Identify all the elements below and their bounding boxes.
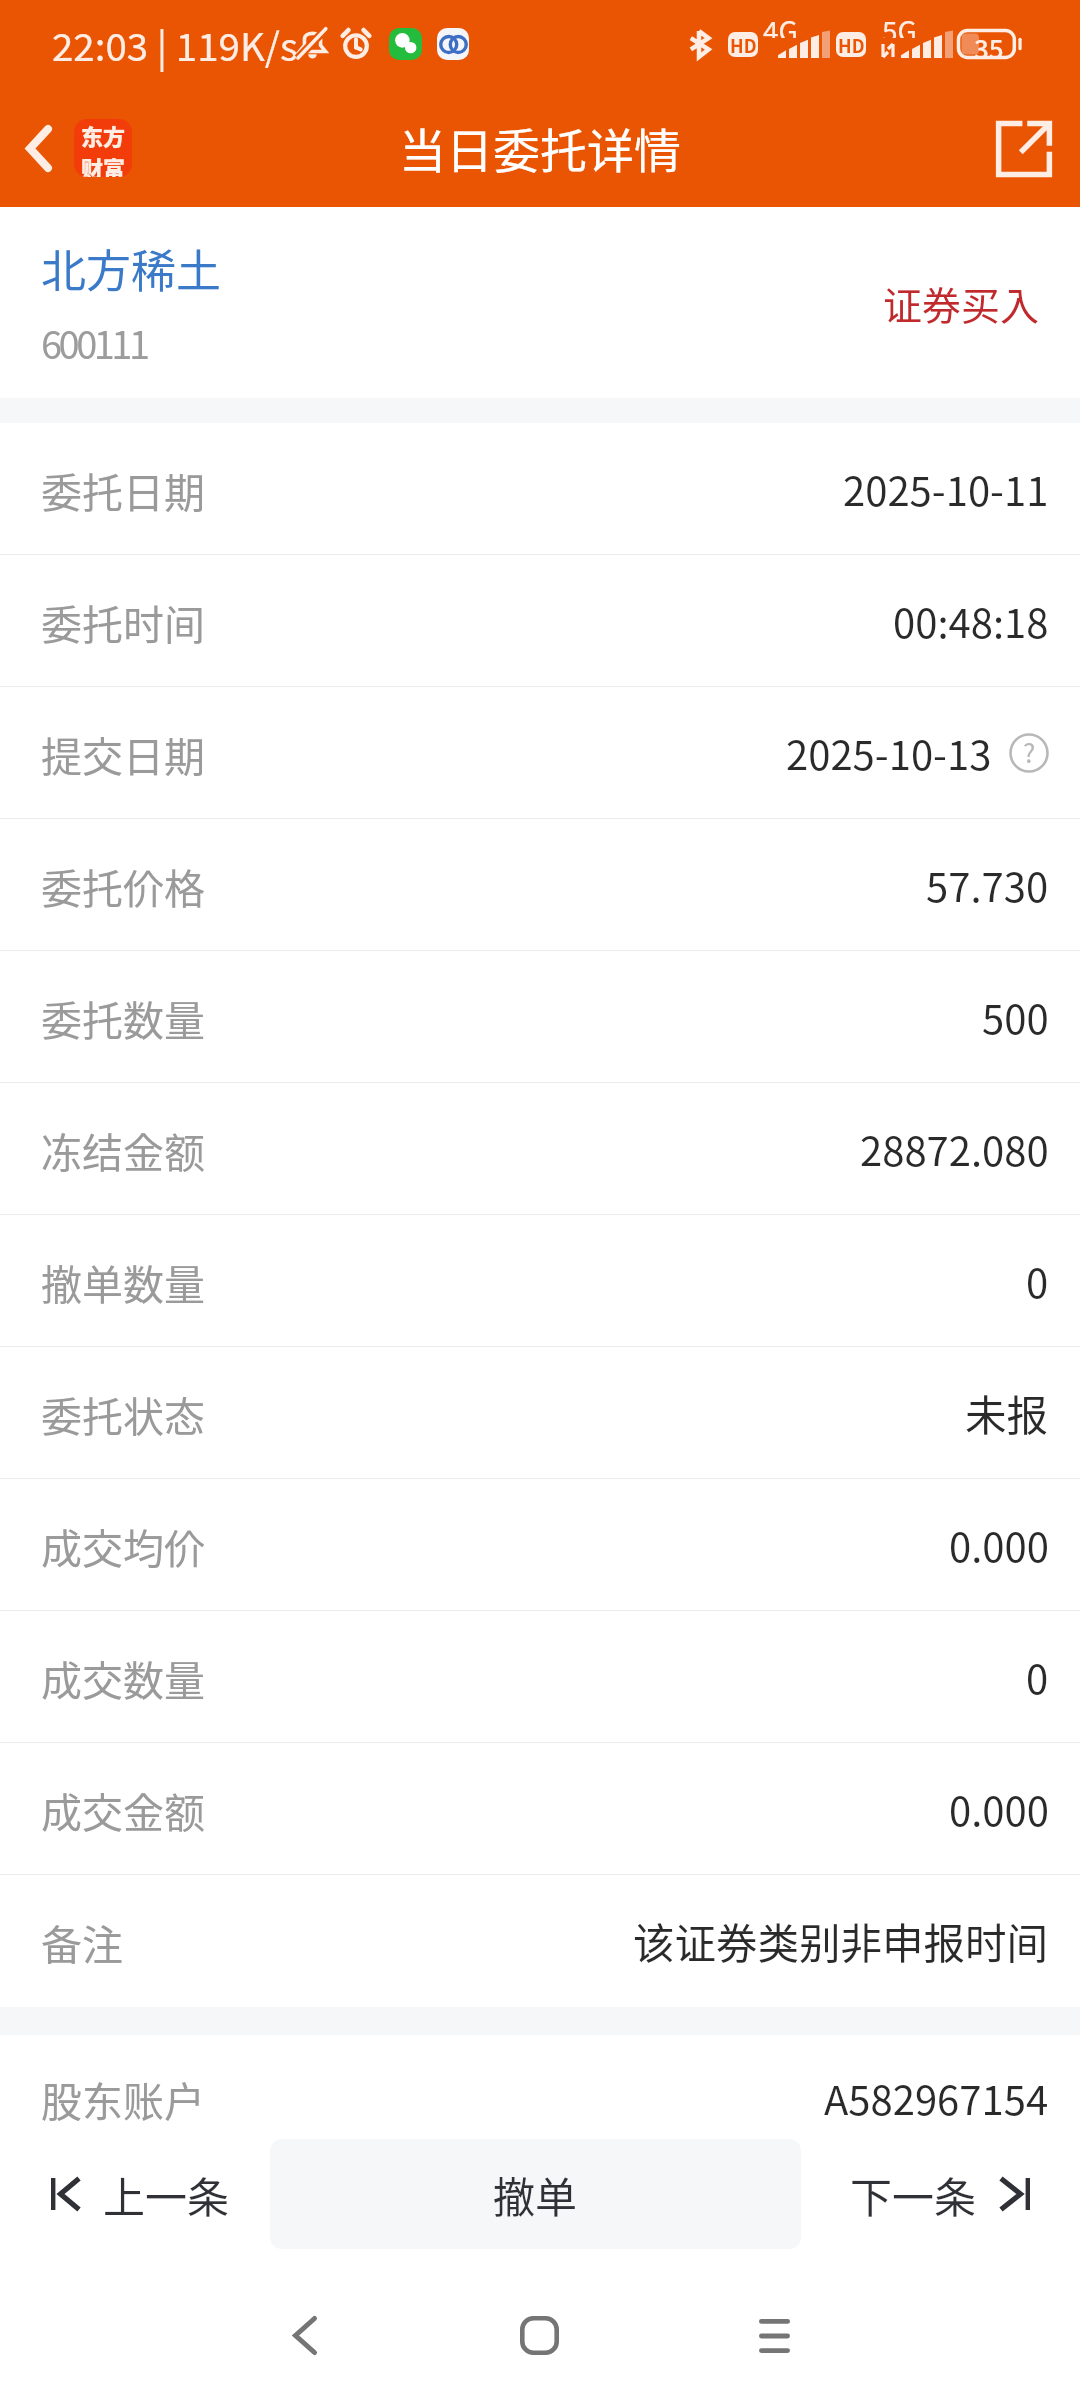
staticText: 东方 — [81, 119, 126, 151]
button[interactable]: 成交数量 — [0, 1611, 1080, 1743]
staticText: 委托日期 — [41, 460, 205, 519]
staticText: 2025-10-13 — [786, 724, 992, 782]
staticText: 成交数量 — [41, 1648, 205, 1707]
button[interactable]: 备注 — [0, 1875, 1080, 2007]
staticText: 委托时间 — [41, 592, 205, 651]
staticText: 撤单 — [493, 2164, 578, 2225]
button[interactable]: 股东账户 — [0, 2035, 1080, 2161]
staticText: 委托状态 — [41, 1384, 205, 1443]
button[interactable]: Home — [491, 2287, 588, 2384]
staticText: 当日委托详情 — [399, 113, 681, 181]
staticText: 5G — [882, 10, 917, 38]
staticText: 该证券类别非申报时间 — [633, 1911, 1049, 1971]
staticText: 500 — [982, 988, 1049, 1046]
staticText: 57.730 — [926, 856, 1049, 914]
button[interactable]: 委托时间 — [0, 555, 1080, 687]
staticText: 冻结金额 — [41, 1120, 205, 1179]
staticText: 0 — [1026, 1252, 1049, 1310]
staticText: 2025-10-11 — [843, 460, 1049, 518]
staticText: 4G — [763, 10, 798, 38]
staticText: 0.000 — [949, 1780, 1049, 1838]
button[interactable]: 撤单数量 — [0, 1215, 1080, 1347]
staticText: 22:03 | 119K/s — [52, 16, 298, 72]
button[interactable]: 成交均价 — [0, 1479, 1080, 1611]
staticText: 委托数量 — [41, 988, 205, 1047]
staticText: 35 — [974, 29, 1004, 59]
button[interactable]: Back — [256, 2287, 353, 2384]
staticText: 北方稀土 — [41, 236, 222, 301]
staticText: A582967154 — [824, 2069, 1049, 2127]
staticText: 28872.080 — [860, 1120, 1049, 1178]
button[interactable]: 上一条 — [51, 2139, 270, 2249]
button[interactable]: Recent apps — [726, 2287, 823, 2384]
button[interactable]: 冻结金额 — [0, 1083, 1080, 1215]
staticText: 证券买入 — [883, 275, 1040, 331]
button[interactable]: 委托价格 — [0, 819, 1080, 951]
button[interactable]: Share — [960, 90, 1080, 207]
staticText: HD — [730, 32, 757, 57]
staticText: HD — [838, 32, 865, 57]
staticText: ? — [1023, 733, 1036, 771]
staticText: 财富 — [81, 151, 126, 177]
staticText: 未报 — [965, 1383, 1049, 1443]
staticText: 0 — [1026, 1648, 1049, 1706]
button[interactable]: 委托状态 — [0, 1347, 1080, 1479]
staticText: 00:48:18 — [893, 592, 1049, 650]
staticText: 撤单数量 — [41, 1252, 205, 1311]
button[interactable]: 撤单 — [270, 2139, 801, 2249]
staticText: 提交日期 — [41, 724, 205, 783]
button[interactable]: 成交金额 — [0, 1743, 1080, 1875]
button[interactable]: 提交日期 — [0, 687, 1080, 819]
button[interactable]: 委托数量 — [0, 951, 1080, 1083]
button[interactable]: 委托日期 — [0, 423, 1080, 555]
staticText: 成交金额 — [41, 1780, 205, 1839]
staticText: 下一条 — [850, 2164, 977, 2225]
staticText: 上一条 — [103, 2164, 230, 2225]
staticText: 成交均价 — [41, 1516, 205, 1575]
staticText: 600111 — [41, 315, 147, 370]
button[interactable]: 下一条 — [801, 2139, 1030, 2249]
staticText: 0.000 — [949, 1516, 1049, 1574]
staticText: 备注 — [41, 1912, 123, 1971]
button[interactable]: Back — [0, 90, 76, 207]
staticText: 股东账户 — [41, 2069, 205, 2128]
staticText: 委托价格 — [41, 856, 205, 915]
